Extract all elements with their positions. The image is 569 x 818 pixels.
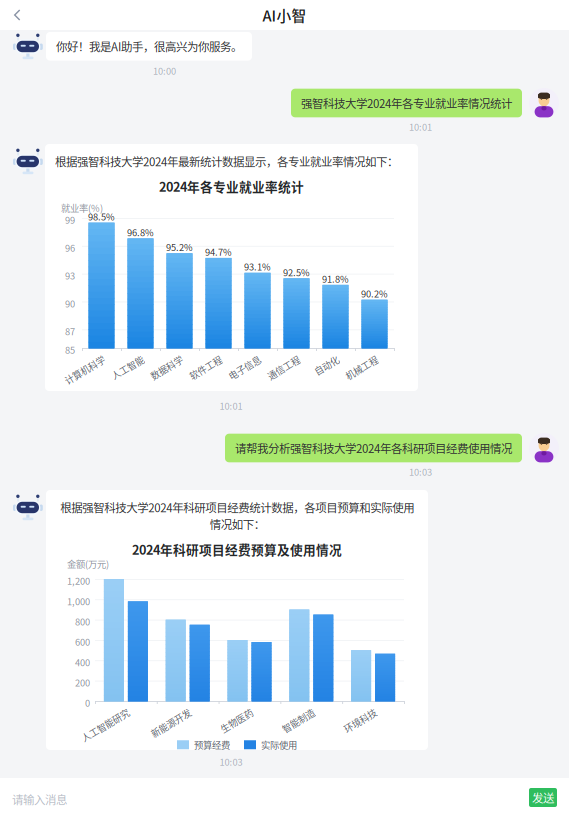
staticText: 92.5% (283, 265, 310, 279)
staticText: 机械工程 (338, 352, 374, 365)
staticText: 95.2% (166, 240, 193, 254)
staticText: 人工智能 (104, 352, 140, 365)
staticText: 85 (65, 343, 75, 356)
staticText: 请帮我分析强智科技大学2024年各科研项目经费使用情况 (235, 440, 512, 456)
staticText: AI小智 (262, 4, 306, 26)
staticText: 生物医药 (213, 705, 249, 718)
staticText: 90 (65, 297, 75, 310)
staticText: 1,200 (67, 574, 90, 587)
staticText: 87 (65, 324, 75, 338)
staticText: 通信工程 (260, 352, 296, 365)
staticText: 93.1% (244, 260, 271, 273)
staticText: 根据强智科技大学2024年最新统计数据显示，各专业就业率情况如下： (55, 153, 398, 170)
button[interactable]: 发送 (529, 788, 557, 807)
staticText: 10:01 (409, 120, 432, 133)
staticText: 99 (65, 213, 75, 226)
staticText: 预算经费 (194, 738, 230, 751)
staticText: 根据强智科技大学2024年科研项目经费统计数据，各项目预算和实际使用情况如下： (60, 499, 414, 532)
staticText: 数据科学 (143, 352, 179, 365)
staticText: 电子信息 (221, 352, 257, 365)
staticText: 就业率(%) (61, 201, 103, 214)
staticText: 10:00 (153, 64, 176, 77)
staticText: 91.8% (322, 272, 349, 285)
staticText: 新能源开发 (143, 705, 188, 718)
staticText: 600 (75, 635, 90, 648)
staticText: 96 (65, 241, 75, 254)
staticText: 10:03 (409, 465, 432, 478)
staticText: 强智科技大学2024年各专业就业率情况统计 (301, 95, 512, 111)
staticText: 10:01 (219, 399, 242, 412)
staticText: 发送 (532, 789, 554, 806)
staticText: 智能制造 (275, 705, 311, 718)
staticText: 金额(万元) (67, 557, 109, 570)
staticText: 2024年各专业就业率统计 (159, 177, 304, 195)
staticText: 软件工程 (182, 352, 218, 365)
staticText: 计算机科学 (56, 352, 101, 365)
staticText: 2024年科研项目经费预算及使用情况 (132, 540, 342, 558)
staticText: 94.7% (205, 245, 232, 258)
staticText: 环境科技 (337, 705, 373, 718)
staticText: 93 (65, 269, 75, 282)
staticText: 自动化 (308, 352, 335, 365)
staticText: 1,000 (67, 594, 90, 608)
staticText: 10:03 (219, 755, 242, 768)
staticText: 800 (75, 615, 90, 628)
staticText: 400 (75, 655, 90, 669)
staticText: 98.5% (88, 210, 115, 223)
staticText: 96.8% (127, 225, 154, 239)
staticText: 实际使用 (261, 738, 297, 751)
button[interactable]: Back (0, 0, 34, 30)
staticText: 人工智能研究 (72, 705, 126, 718)
staticText: 你好！我是AI助手，很高兴为你服务。 (56, 38, 242, 55)
staticText: 200 (75, 676, 90, 689)
staticText: 90.2% (361, 287, 388, 300)
staticText: 请输入消息 (12, 791, 67, 808)
staticText: 0 (85, 696, 90, 709)
